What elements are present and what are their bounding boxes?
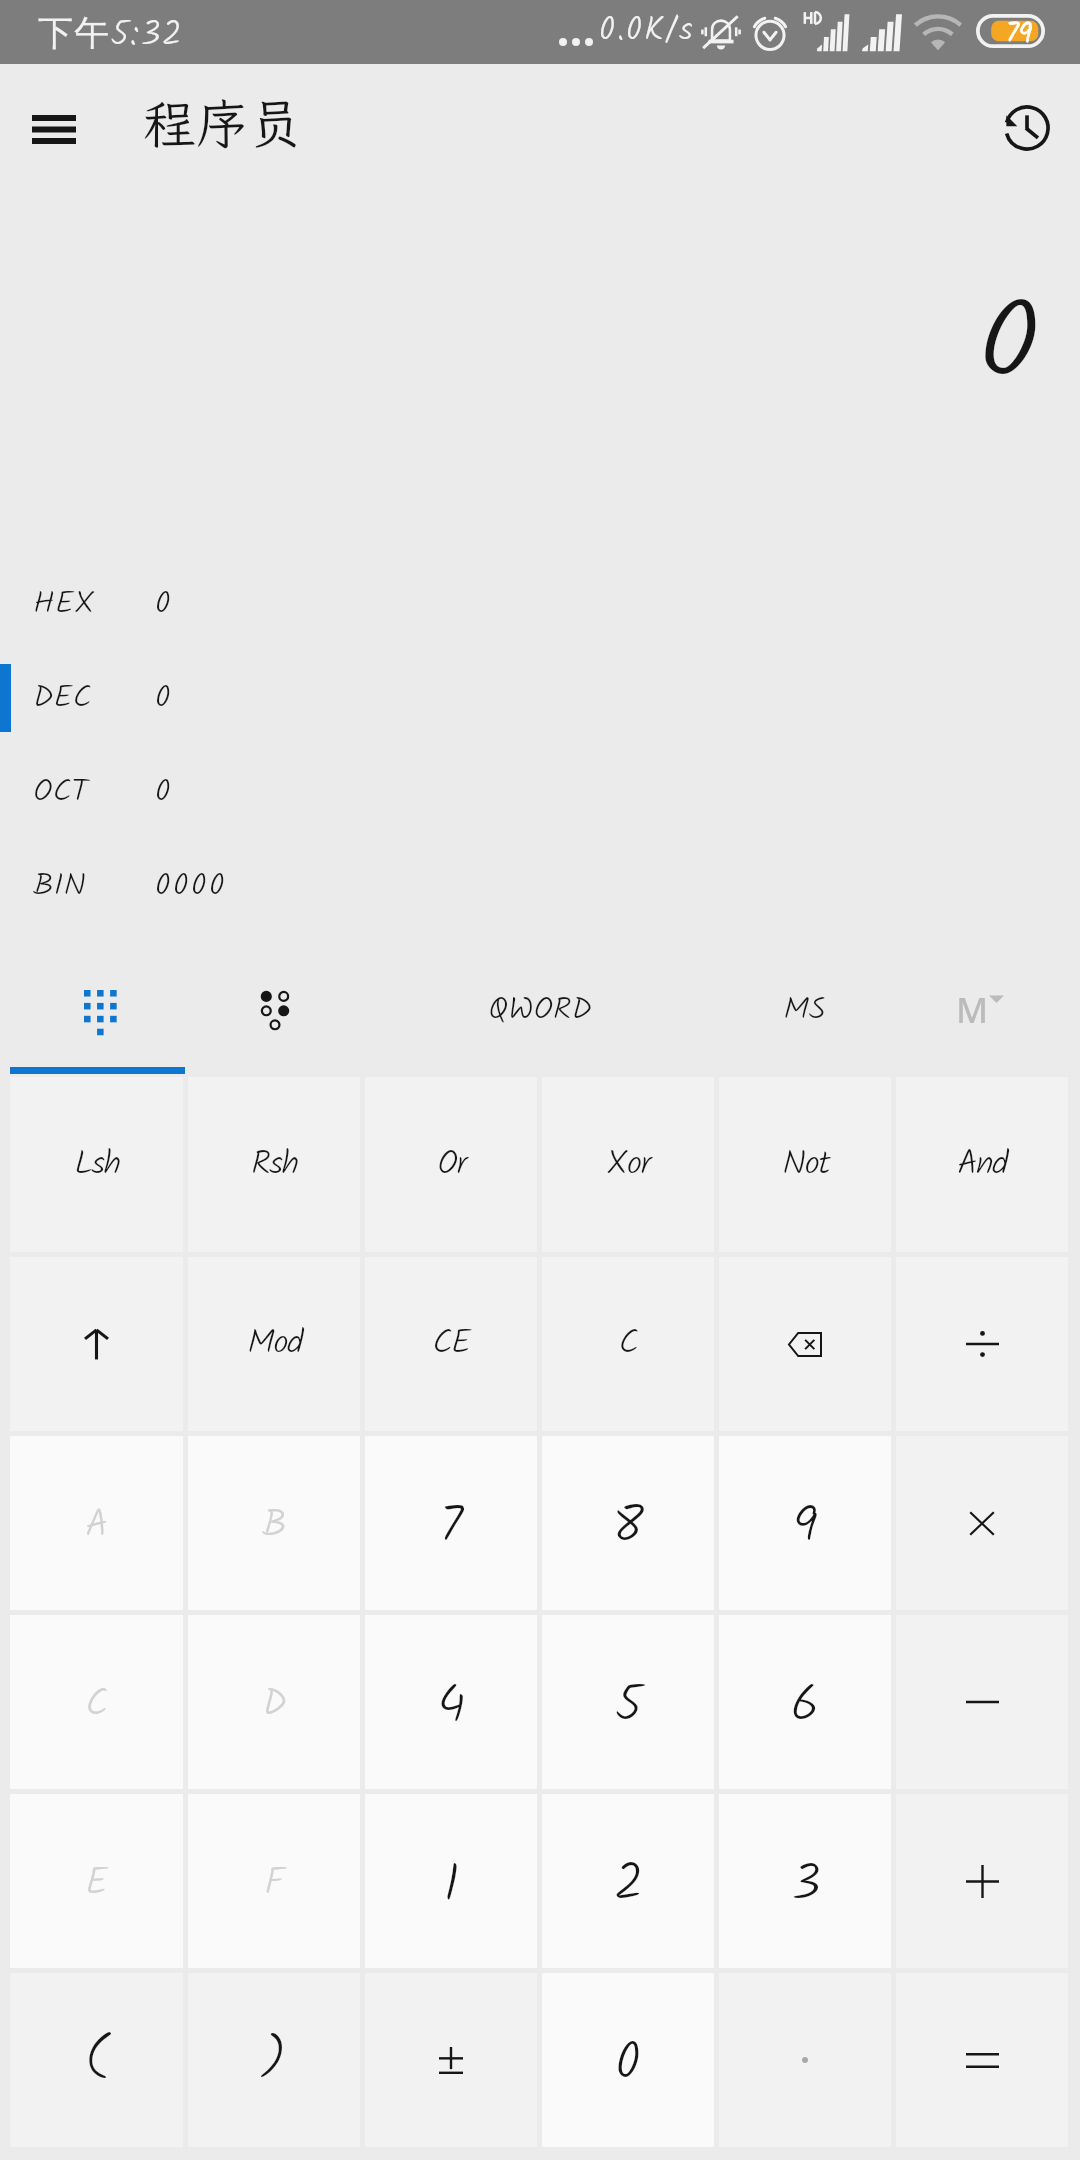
button[interactable]: OCT xyxy=(0,745,1080,839)
staticText: C xyxy=(618,1317,639,1371)
button[interactable]: DEC xyxy=(0,651,1080,745)
staticText: 9 xyxy=(793,1486,818,1569)
button[interactable]: Not xyxy=(719,1077,891,1252)
staticText: DEC xyxy=(33,673,92,724)
button[interactable] xyxy=(896,1257,1068,1431)
button[interactable]: History xyxy=(982,79,1070,167)
button[interactable]: 2 xyxy=(542,1794,714,1968)
staticText: 程序员 xyxy=(143,88,302,158)
button[interactable]: 7 xyxy=(365,1436,537,1610)
button[interactable]: 1 xyxy=(365,1794,537,1968)
staticText: A xyxy=(85,1496,108,1557)
staticText: 0 xyxy=(977,262,1042,433)
staticText: Not xyxy=(782,1138,829,1192)
staticText: BIN xyxy=(33,861,87,912)
staticText: Lsh xyxy=(74,1138,120,1192)
button[interactable]: Xor xyxy=(542,1077,714,1252)
staticText: 0 xyxy=(615,2023,641,2106)
staticText: D xyxy=(262,1675,287,1736)
staticText: 6 xyxy=(790,1665,820,1748)
button[interactable]: B xyxy=(188,1436,360,1610)
staticText: 7 xyxy=(439,1486,463,1569)
staticText: HEX xyxy=(33,579,95,630)
staticText: E xyxy=(85,1854,108,1915)
button[interactable]: Rsh xyxy=(188,1077,360,1252)
staticText: 0 xyxy=(155,767,173,818)
button[interactable]: C xyxy=(542,1257,714,1431)
staticText: Xor xyxy=(606,1138,650,1192)
staticText: 0 xyxy=(155,579,173,630)
button[interactable] xyxy=(896,1436,1068,1610)
staticText: C xyxy=(85,1675,108,1736)
button[interactable]: Menu xyxy=(10,79,98,167)
staticText: OCT xyxy=(33,767,89,818)
staticText: Rsh xyxy=(251,1138,298,1192)
button[interactable]: 0 xyxy=(542,1973,714,2147)
button[interactable]: 6 xyxy=(719,1615,891,1789)
button[interactable]: 5 xyxy=(542,1615,714,1789)
button[interactable]: CE xyxy=(365,1257,537,1431)
button[interactable] xyxy=(896,1615,1068,1789)
staticText: 4 xyxy=(437,1665,466,1748)
button[interactable]: 3 xyxy=(719,1794,891,1968)
staticText: F xyxy=(264,1854,284,1915)
staticText: M xyxy=(956,986,989,1034)
button[interactable]: 8 xyxy=(542,1436,714,1610)
button[interactable]: 9 xyxy=(719,1436,891,1610)
button[interactable]: QWORD xyxy=(363,933,716,1077)
staticText: Or xyxy=(437,1138,466,1192)
button[interactable] xyxy=(365,1973,537,2147)
staticText: 0.0K/s xyxy=(599,5,694,58)
staticText: ) xyxy=(262,2022,286,2099)
staticText: And xyxy=(957,1138,1007,1192)
button[interactable] xyxy=(896,1794,1068,1968)
staticText: 下午5:32 xyxy=(38,8,183,64)
button[interactable]: Lsh xyxy=(10,1077,183,1252)
staticText: 1 xyxy=(443,1844,460,1927)
button[interactable] xyxy=(10,1257,183,1431)
button[interactable]: ( xyxy=(10,1973,183,2147)
button[interactable]: Mod xyxy=(188,1257,360,1431)
button[interactable]: Bit toggle xyxy=(187,933,363,1077)
staticText: Mod xyxy=(247,1317,302,1371)
button[interactable]: 4 xyxy=(365,1615,537,1789)
button[interactable]: HEX xyxy=(0,557,1080,651)
staticText: 79 xyxy=(1006,12,1033,46)
staticText: MS xyxy=(783,985,826,1036)
staticText: QWORD xyxy=(488,985,592,1036)
staticText: 0 xyxy=(155,673,173,724)
staticText: 3 xyxy=(790,1844,821,1927)
button[interactable]: BIN xyxy=(0,839,1080,933)
button[interactable]: M xyxy=(892,933,1068,1077)
button[interactable] xyxy=(719,1257,891,1431)
staticText: B xyxy=(262,1496,287,1557)
staticText: ( xyxy=(85,2022,109,2099)
staticText: 0000 xyxy=(155,861,227,912)
button[interactable] xyxy=(896,1973,1068,2147)
staticText: 2 xyxy=(613,1844,644,1927)
button[interactable]: And xyxy=(896,1077,1068,1252)
button[interactable]: ) xyxy=(188,1973,360,2147)
staticText: CE xyxy=(432,1317,470,1371)
staticText: 8 xyxy=(612,1486,644,1569)
button[interactable]: Numeric keypad xyxy=(10,933,187,1077)
button[interactable]: MS xyxy=(716,933,892,1077)
staticText: 5 xyxy=(614,1665,643,1748)
button[interactable]: Or xyxy=(365,1077,537,1252)
